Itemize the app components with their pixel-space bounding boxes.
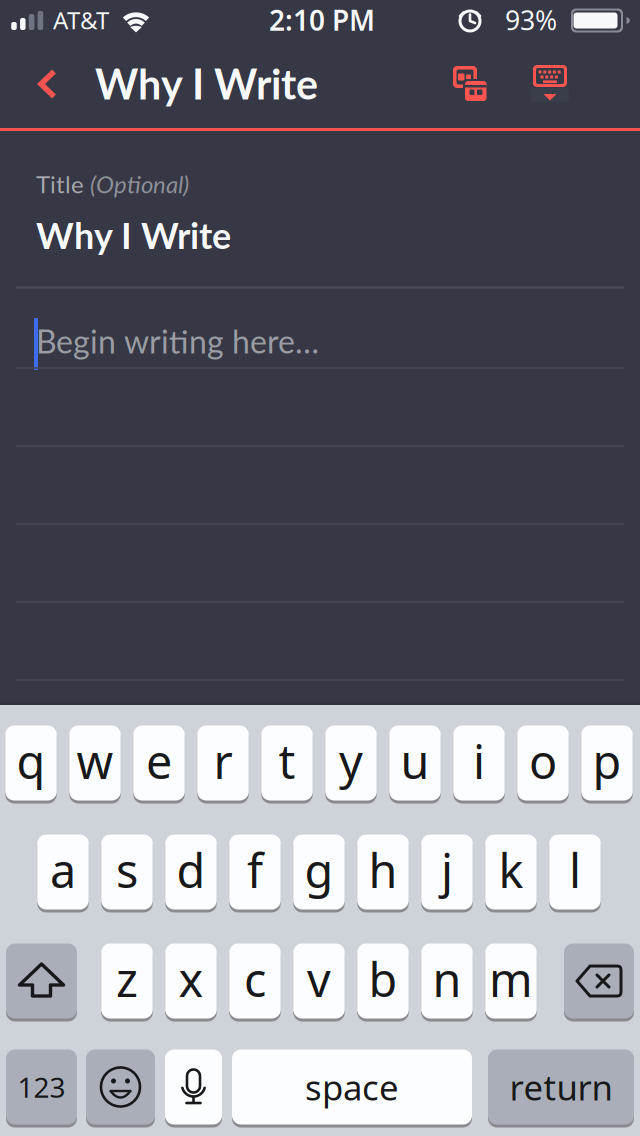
button[interactable]: Delete <box>564 943 634 1021</box>
button[interactable]: Emoji <box>86 1049 155 1127</box>
staticText: (Optional) <box>84 170 189 198</box>
staticText: e <box>146 730 172 792</box>
staticText: j <box>441 839 453 901</box>
staticText: l <box>569 839 581 901</box>
staticText: d <box>176 839 205 901</box>
button[interactable]: f <box>229 834 281 912</box>
staticText: g <box>304 839 333 901</box>
staticText: AT&T <box>53 4 109 36</box>
button[interactable]: g <box>293 834 345 912</box>
button[interactable]: b <box>357 943 409 1021</box>
button[interactable]: j <box>421 834 473 912</box>
button[interactable]: y <box>325 725 377 803</box>
button[interactable]: w <box>69 725 121 803</box>
staticText: Title <box>36 170 84 198</box>
staticText: i <box>473 730 485 792</box>
staticText: q <box>16 730 45 792</box>
staticText: v <box>307 948 331 1010</box>
button[interactable]: p <box>581 725 633 803</box>
staticText: p <box>592 730 621 792</box>
button[interactable]: 123 <box>6 1049 77 1127</box>
staticText: Why I Write <box>36 213 231 257</box>
button[interactable]: s <box>101 834 153 912</box>
staticText: t <box>278 730 295 792</box>
button[interactable]: k <box>485 834 537 912</box>
button[interactable]: Cards view <box>448 62 492 106</box>
staticText: 93% <box>505 2 557 38</box>
button[interactable]: l <box>549 834 601 912</box>
button[interactable]: o <box>517 725 569 803</box>
button[interactable]: h <box>357 834 409 912</box>
staticText: 2:10 PM <box>269 1 375 39</box>
button[interactable]: z <box>101 943 153 1021</box>
staticText: Why I Write <box>95 59 318 108</box>
staticText: z <box>116 948 138 1010</box>
staticText: k <box>498 839 523 901</box>
staticText: h <box>368 839 397 901</box>
button[interactable]: a <box>37 834 89 912</box>
button[interactable]: u <box>389 725 441 803</box>
staticText: m <box>489 948 533 1010</box>
staticText: x <box>178 948 203 1010</box>
button[interactable]: Shift <box>6 943 77 1021</box>
button[interactable]: v <box>293 943 345 1021</box>
staticText: n <box>432 948 461 1010</box>
button[interactable]: t <box>261 725 313 803</box>
button[interactable]: space <box>232 1049 472 1127</box>
button[interactable]: return <box>488 1049 634 1127</box>
staticText: b <box>368 948 397 1010</box>
button[interactable]: Dictate <box>165 1049 222 1127</box>
button[interactable]: Dismiss keyboard <box>528 62 572 106</box>
button[interactable]: i <box>453 725 505 803</box>
button[interactable]: c <box>229 943 281 1021</box>
button[interactable]: n <box>421 943 473 1021</box>
button[interactable]: q <box>5 725 57 803</box>
staticText: f <box>247 839 263 901</box>
staticText: w <box>76 730 113 792</box>
staticText: r <box>213 730 232 792</box>
button[interactable]: x <box>165 943 217 1021</box>
staticText: a <box>50 839 76 901</box>
staticText: Begin writing here… <box>36 322 319 360</box>
staticText: o <box>529 730 557 792</box>
button[interactable]: d <box>165 834 217 912</box>
staticText: 123 <box>17 1068 65 1106</box>
button[interactable]: Back <box>38 69 58 99</box>
staticText: y <box>339 730 363 792</box>
staticText: return <box>509 1064 612 1110</box>
button[interactable]: m <box>485 943 537 1021</box>
staticText: c <box>244 948 266 1010</box>
staticText: space <box>305 1064 399 1110</box>
button[interactable]: r <box>197 725 249 803</box>
staticText: s <box>116 839 138 901</box>
staticText: u <box>400 730 429 792</box>
button[interactable]: e <box>133 725 185 803</box>
